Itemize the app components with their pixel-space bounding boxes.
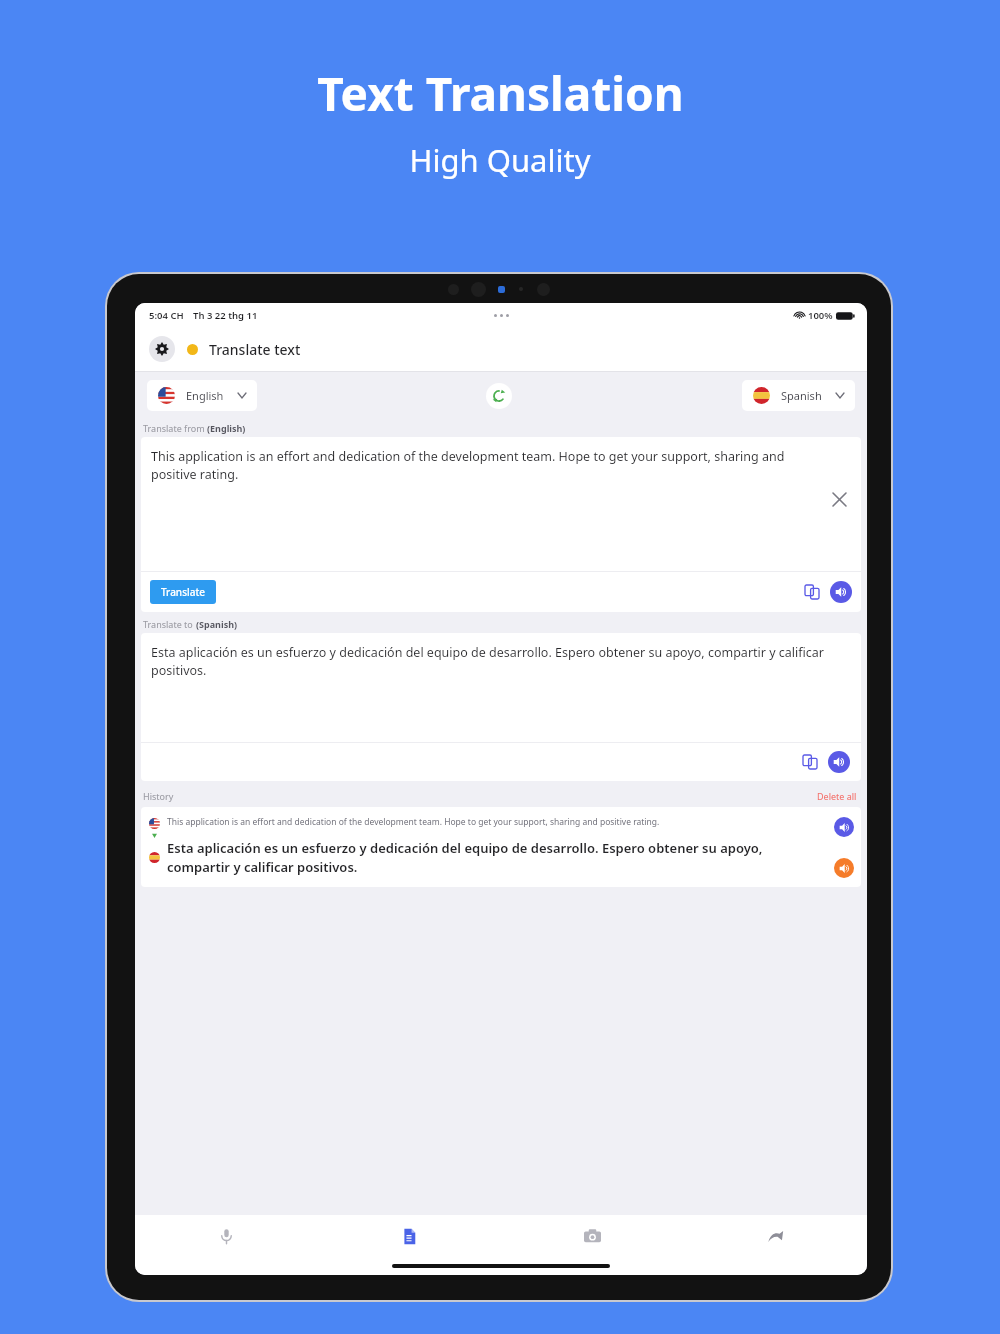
button[interactable]: This application is an effort and dedica… — [141, 807, 861, 887]
button[interactable]: Copy — [801, 581, 823, 603]
staticText: 5:04 CH — [149, 309, 184, 322]
button[interactable]: Camera translation — [501, 1215, 684, 1257]
staticText: This application is an effort and dedica… — [151, 448, 817, 483]
staticText: Esta aplicación es un esfuerzo y dedicac… — [167, 839, 821, 876]
staticText: (English) — [207, 422, 246, 434]
staticText: High Quality — [409, 139, 591, 181]
button[interactable]: Premium — [187, 344, 198, 355]
staticText: Translate to — [143, 618, 196, 630]
staticText: Translate text — [209, 340, 301, 359]
staticText: This application is an effort and dedica… — [167, 816, 660, 828]
button[interactable]: Swap languages — [486, 383, 512, 409]
staticText: English — [186, 388, 224, 403]
button[interactable]: Speak Spanish — [834, 858, 854, 878]
button[interactable]: Copy translation — [799, 751, 821, 773]
button[interactable]: Delete all — [815, 788, 859, 804]
staticText: History — [143, 790, 174, 802]
button[interactable]: Share — [684, 1215, 867, 1257]
staticText: Translate from — [143, 422, 207, 434]
staticText: Text Translation — [317, 62, 684, 125]
staticText: Th 3 22 thg 11 — [193, 309, 258, 322]
button[interactable]: Translate — [150, 580, 216, 604]
staticText: Translate — [161, 585, 205, 599]
button[interactable]: Spanish — [742, 380, 855, 411]
button[interactable]: English — [147, 380, 257, 411]
staticText: 100% — [808, 309, 833, 322]
button[interactable]: Speak English — [834, 817, 854, 837]
staticText: Spanish — [781, 388, 822, 403]
button[interactable]: Text translation — [318, 1215, 501, 1257]
staticText: Esta aplicación es un esfuerzo y dedicac… — [151, 644, 851, 679]
button[interactable]: Settings — [149, 336, 175, 362]
button[interactable]: Voice translation — [135, 1215, 318, 1257]
button[interactable]: Speak translation — [828, 751, 850, 773]
staticText: Delete all — [817, 790, 857, 802]
button[interactable]: Clear text — [829, 489, 849, 509]
staticText: (Spanish) — [196, 618, 238, 630]
button[interactable]: Speak source text — [830, 581, 852, 603]
